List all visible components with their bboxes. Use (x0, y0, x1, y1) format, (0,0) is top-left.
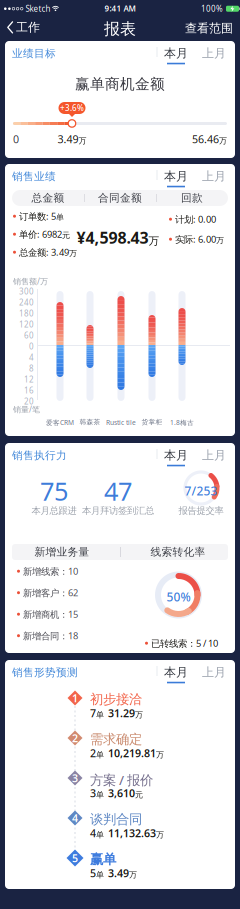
staticText: 7/253 (184, 483, 217, 499)
staticText: 100% (201, 3, 223, 14)
button[interactable]: 总金额 (12, 190, 84, 206)
staticText: 业绩目标 (12, 47, 56, 60)
staticText: 3.49万 (57, 132, 86, 146)
staticText: 上月 (202, 169, 226, 184)
button[interactable]: 上月 (202, 448, 226, 463)
staticText: 47 (104, 474, 132, 508)
staticText: 实际: 6.00万 (175, 233, 224, 245)
staticText: 爱客CRM (46, 418, 74, 427)
staticText: 3 (72, 771, 78, 785)
button[interactable]: 回款 (156, 190, 228, 206)
staticText: 1.8梅古 (170, 418, 194, 427)
staticText: 本月总跟进 (31, 505, 76, 516)
staticText: Rustic tile (106, 418, 136, 427)
staticText: 销售业绩 (12, 170, 56, 183)
staticText: +3.6% (60, 103, 84, 113)
staticText: 4 (72, 811, 78, 825)
staticText: 新增线索：10 (23, 565, 78, 577)
staticText: 240 (19, 297, 34, 308)
staticText: 120 (19, 319, 34, 330)
staticText: 上月 (202, 448, 226, 463)
staticText: 初步接洽 (90, 691, 142, 707)
staticText: 本月 (164, 169, 188, 184)
staticText: 报表 (104, 19, 136, 39)
staticText: 新增商机：15 (23, 608, 78, 620)
button[interactable]: 合同金额 (84, 190, 156, 206)
staticText: 单价: 6982元 (19, 228, 70, 240)
staticText: 新增合同：18 (23, 629, 78, 642)
staticText: 20 (24, 396, 34, 407)
staticText: 回款 (181, 191, 203, 204)
staticText: 本月拜访签到汇总 (82, 505, 154, 516)
staticText: 50% (166, 589, 190, 605)
staticText: 报告提交率 (178, 505, 223, 516)
staticText: 75 (40, 474, 68, 508)
staticText: 销售额/万 (13, 276, 48, 287)
staticText: 谈判合同 (90, 811, 142, 827)
staticText: 9:41 AM (104, 3, 135, 14)
staticText: 3单 3,610元 (90, 786, 143, 800)
staticText: 4单 11,132.63万 (90, 826, 164, 840)
staticText: 上月 (202, 665, 226, 680)
staticText: 线索转化率 (150, 545, 205, 558)
staticText: 销售形势预测 (12, 666, 78, 679)
staticText: 韩森茶 (79, 418, 100, 426)
button[interactable]: 本月 (164, 665, 188, 683)
staticText: 计划: 0.00 (175, 213, 216, 225)
staticText: 12 (24, 374, 34, 385)
staticText: 2单 10,219.81万 (90, 746, 164, 760)
staticText: 新增业务量 (34, 545, 89, 558)
staticText: 赢单商机金额 (75, 75, 165, 93)
staticText: 订单数: 5单 (19, 210, 64, 222)
staticText: 0 (29, 341, 34, 352)
staticText: 2 (72, 731, 78, 745)
staticText: 合同金额 (98, 191, 142, 204)
staticText: 本月 (164, 46, 188, 61)
staticText: Sketch (25, 3, 50, 14)
staticText: 总金额: 3.49万 (19, 246, 77, 258)
button[interactable]: 上月 (202, 169, 226, 184)
staticText: 5 (72, 851, 78, 865)
staticText: 1 (72, 691, 78, 705)
staticText: 总金额 (31, 191, 64, 204)
staticText: 4 (29, 352, 34, 363)
staticText: 销售执行力 (12, 449, 67, 462)
button[interactable]: 上月 (202, 46, 226, 61)
staticText: 查看范围 (185, 21, 233, 36)
button[interactable]: 本月 (164, 448, 188, 466)
staticText: 上月 (202, 46, 226, 61)
button[interactable]: 上月 (202, 665, 226, 680)
staticText: 本月 (164, 448, 188, 463)
staticText: 8 (29, 363, 34, 374)
staticText: 销量/笔 (13, 404, 40, 415)
staticText: 7单 31.29万 (90, 706, 143, 720)
button[interactable]: 本月 (164, 169, 188, 187)
staticText: 180 (19, 308, 34, 319)
button[interactable]: 本月 (164, 46, 188, 64)
staticText: 需求确定 (90, 731, 142, 747)
staticText: 0 (13, 132, 19, 146)
staticText: 60 (24, 330, 34, 341)
staticText: 工作 (16, 20, 40, 35)
staticText: 货掌柜 (141, 418, 162, 426)
button[interactable]: 工作 (7, 20, 40, 35)
staticText: 300 (19, 286, 34, 297)
staticText: 方案 / 报价 (90, 771, 153, 789)
staticText: 56.46万 (192, 132, 227, 146)
staticText: 5单 3.49万 (90, 866, 137, 880)
staticText: 新增客户：62 (23, 586, 78, 599)
button[interactable]: 查看范围 (181, 21, 233, 36)
staticText: 已转线索：5 / 10 (151, 637, 218, 649)
staticText: 赢单 (90, 851, 116, 867)
staticText: 本月 (164, 665, 188, 680)
staticText: ¥4,598.43万 (76, 227, 159, 248)
staticText: 16 (24, 385, 34, 396)
